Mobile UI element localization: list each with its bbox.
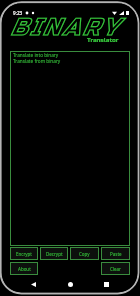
staticText: Decrypt xyxy=(46,251,63,257)
button[interactable]: Paste xyxy=(101,247,130,260)
staticText: Clear xyxy=(110,266,121,272)
button[interactable]: Encrypt xyxy=(10,247,38,260)
button[interactable]: Copy xyxy=(70,247,99,260)
button[interactable]: About xyxy=(10,262,38,275)
staticText: Translate from binary xyxy=(13,58,61,64)
staticText: Encrypt xyxy=(16,251,32,257)
staticText: Translate into binary xyxy=(13,52,59,58)
staticText: Translator xyxy=(87,36,119,43)
staticText: Paste xyxy=(110,251,122,257)
button[interactable]: Recents xyxy=(100,278,112,290)
staticText: 9:23 xyxy=(13,10,23,16)
button[interactable]: Home xyxy=(64,278,76,290)
staticText: BINARY xyxy=(10,13,121,42)
staticText: Copy xyxy=(79,251,90,257)
button[interactable]: Clear xyxy=(101,262,130,275)
staticText: About xyxy=(18,266,31,272)
button[interactable]: Back xyxy=(27,278,39,290)
button[interactable]: Decrypt xyxy=(40,247,68,260)
